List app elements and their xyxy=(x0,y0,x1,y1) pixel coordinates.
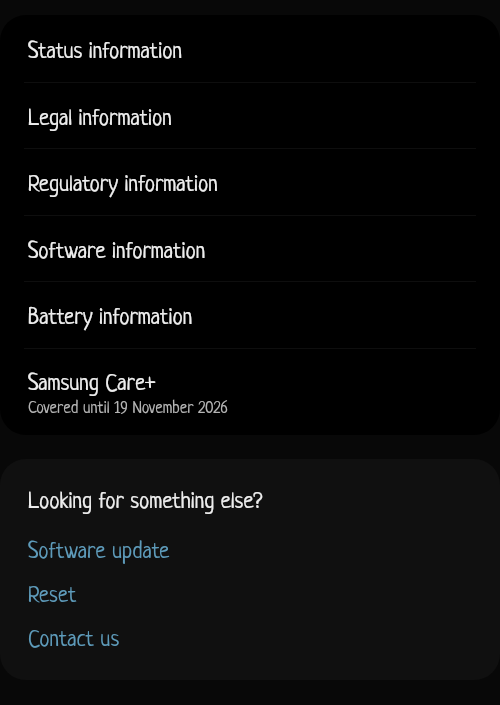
staticText: Covered until 19 November 2026 xyxy=(28,400,228,418)
staticText: Battery information xyxy=(28,306,193,330)
button[interactable]: Software information xyxy=(0,216,500,281)
staticText: Software information xyxy=(28,240,206,264)
staticText: Reset xyxy=(28,584,77,608)
button[interactable]: Samsung Care+ xyxy=(0,349,500,435)
button[interactable]: Software update xyxy=(0,527,500,571)
button[interactable]: Battery information xyxy=(0,282,500,348)
staticText: Regulatory information xyxy=(28,173,218,197)
staticText: Samsung Care+ xyxy=(28,372,156,396)
button[interactable]: Status information xyxy=(0,15,500,82)
staticText: Status information xyxy=(28,40,182,64)
staticText: Looking for something else? xyxy=(28,490,263,514)
staticText: Contact us xyxy=(28,628,120,652)
button[interactable]: Contact us xyxy=(0,615,500,659)
staticText: Software update xyxy=(28,540,170,564)
staticText: Legal information xyxy=(28,107,172,131)
button[interactable]: Reset xyxy=(0,571,500,615)
button[interactable]: Legal information xyxy=(0,83,500,148)
button[interactable]: Regulatory information xyxy=(0,149,500,215)
